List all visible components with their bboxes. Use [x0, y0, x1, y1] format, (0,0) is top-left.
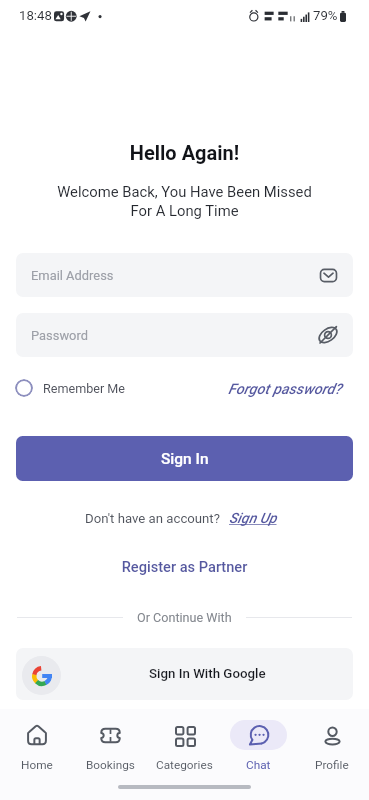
- button[interactable]: Bookings: [73, 715, 147, 772]
- staticText: Welcome Back, You Have Been Missed For A…: [0, 183, 369, 220]
- button[interactable]: Sign In: [16, 436, 353, 481]
- staticText: Email Address: [31, 268, 114, 283]
- button[interactable]: Sign In With Google: [16, 648, 353, 700]
- staticText: Home: [21, 758, 53, 772]
- staticText: Bookings: [86, 758, 135, 772]
- staticText: Don't have an account?: [85, 511, 220, 526]
- button[interactable]: Register as Partner: [0, 558, 369, 575]
- other: Email: [319, 266, 338, 285]
- staticText: 79%: [313, 8, 338, 23]
- staticText: Categories: [156, 758, 213, 772]
- other: Show password: [318, 325, 338, 345]
- other: Home: [26, 724, 48, 746]
- staticText: Chat: [246, 758, 271, 772]
- staticText: Or Continue With: [137, 610, 232, 625]
- other: Profile: [322, 725, 343, 746]
- button[interactable]: Remember Me: [15, 376, 126, 400]
- button[interactable]: Password: [16, 313, 353, 357]
- other: Bookings: [100, 725, 121, 746]
- staticText: Remember Me: [43, 381, 126, 396]
- button[interactable]: Categories: [147, 715, 221, 772]
- other: Categories: [175, 726, 194, 745]
- staticText: 18:48: [19, 8, 52, 23]
- button[interactable]: Chat: [221, 715, 295, 772]
- button[interactable]: Profile: [295, 715, 369, 772]
- staticText: Sign In: [161, 450, 209, 468]
- staticText: Profile: [315, 758, 349, 772]
- other: Chat: [248, 725, 269, 746]
- button[interactable]: Email Address: [16, 253, 353, 297]
- staticText: Hello Again!: [0, 141, 369, 164]
- staticText: Password: [31, 328, 88, 343]
- button[interactable]: Forgot password?: [240, 380, 354, 397]
- button[interactable]: Home: [0, 715, 73, 772]
- staticText: Sign In With Google: [149, 666, 266, 682]
- button[interactable]: Sign Up: [229, 510, 277, 527]
